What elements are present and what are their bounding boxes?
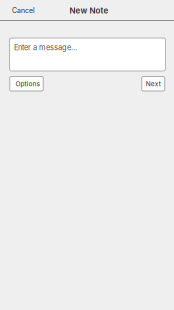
button[interactable]: Enter a message — [9, 38, 165, 71]
button[interactable]: Options — [10, 76, 43, 91]
button[interactable]: Cancel — [8, 1, 38, 19]
button[interactable]: Next — [142, 76, 165, 91]
staticText: Cancel — [12, 6, 35, 15]
staticText: Options — [15, 80, 39, 88]
staticText: Enter a message... — [14, 43, 77, 52]
staticText: New Note — [69, 6, 108, 15]
staticText: Next — [146, 80, 161, 88]
